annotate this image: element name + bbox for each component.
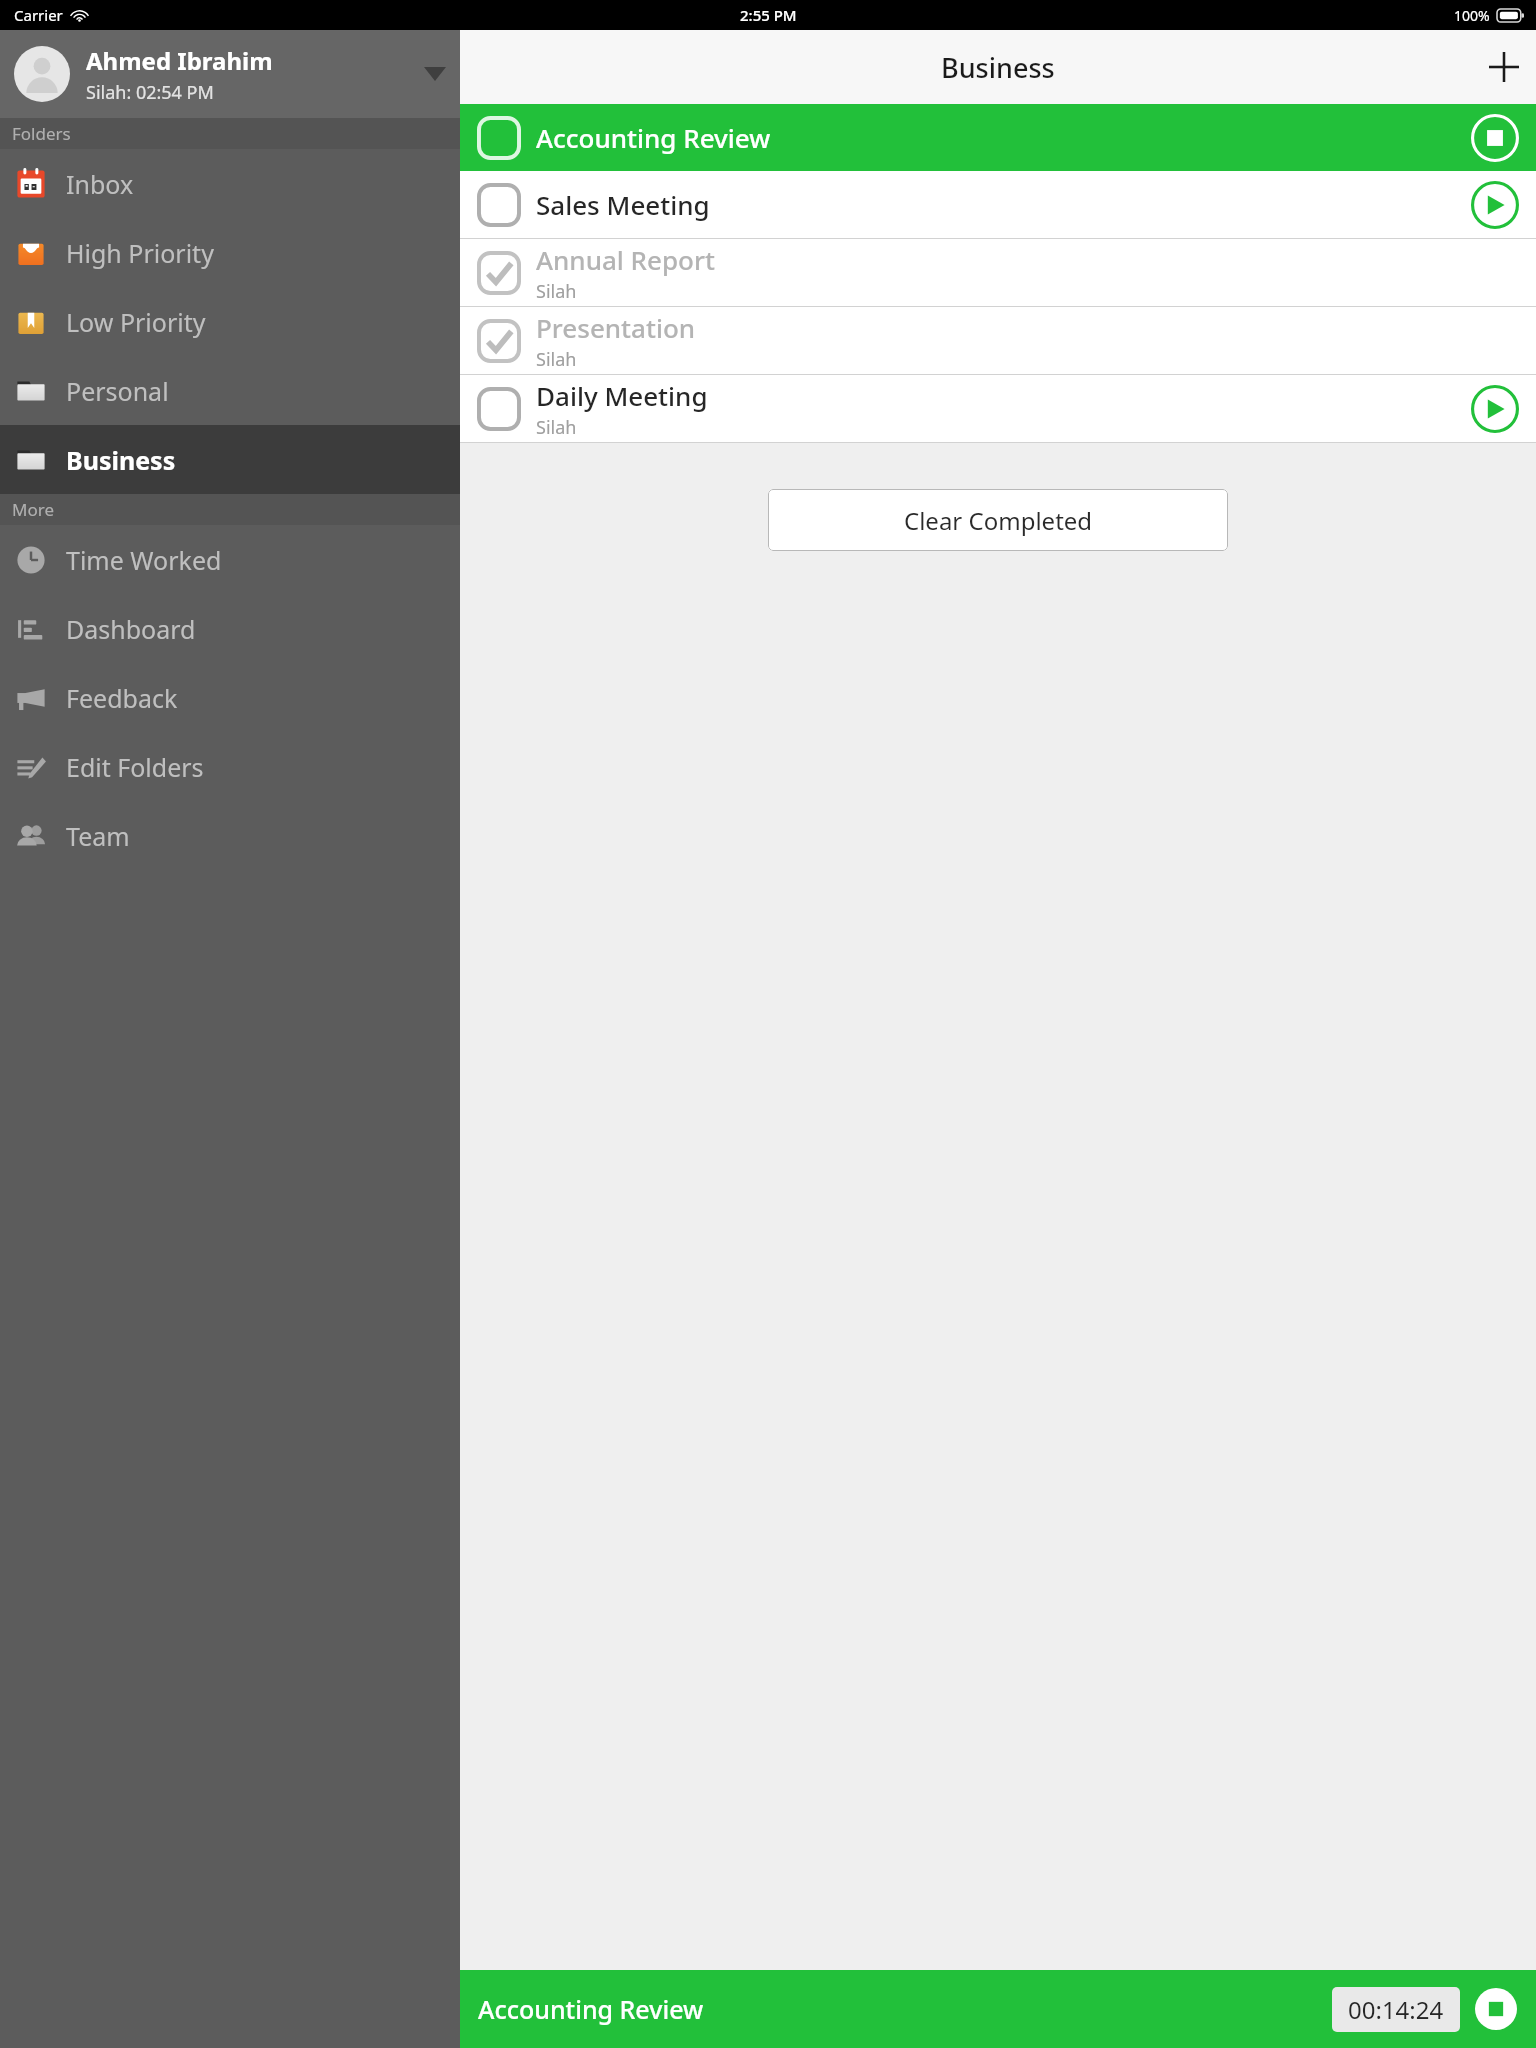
- staticText: 2:55 PM: [740, 5, 797, 25]
- staticText: Silah: [536, 415, 577, 440]
- button[interactable]: Ahmed Ibrahim: [0, 30, 460, 118]
- staticText: Daily Meeting: [536, 378, 708, 413]
- button[interactable]: Time Worked: [0, 525, 460, 594]
- staticText: Folders: [12, 122, 71, 145]
- button[interactable]: Personal: [0, 356, 460, 425]
- staticText: Edit Folders: [66, 750, 204, 784]
- staticText: Time Worked: [66, 543, 222, 577]
- button[interactable]: Clear Completed: [768, 489, 1228, 551]
- button[interactable]: Stop Accounting Review: [1468, 111, 1522, 165]
- staticText: 00:14:24: [1348, 1993, 1444, 2026]
- staticText: Carrier: [14, 5, 63, 25]
- button[interactable]: Toggle Sales Meeting: [460, 171, 1536, 238]
- staticText: Silah: 02:54 PM: [86, 80, 214, 105]
- staticText: Accounting Review: [478, 1992, 704, 2026]
- staticText: Silah: [536, 347, 577, 372]
- button[interactable]: Start Daily Meeting: [1468, 382, 1522, 436]
- button[interactable]: Dashboard: [0, 594, 460, 663]
- button[interactable]: Toggle Accounting Review: [460, 104, 1536, 171]
- button[interactable]: Stop timer: [1474, 1987, 1518, 2031]
- button[interactable]: Toggle Annual Report: [460, 239, 1536, 306]
- button[interactable]: Start Sales Meeting: [1468, 178, 1522, 232]
- button[interactable]: Add task: [1472, 35, 1536, 99]
- button[interactable]: Toggle Presentation: [460, 307, 1536, 374]
- staticText: Silah: [536, 279, 577, 304]
- staticText: Accounting Review: [536, 120, 771, 155]
- button[interactable]: Feedback: [0, 663, 460, 732]
- staticText: High Priority: [66, 236, 214, 270]
- button[interactable]: Team: [0, 801, 460, 870]
- staticText: Clear Completed: [904, 504, 1093, 537]
- button[interactable]: High Priority: [0, 218, 460, 287]
- button[interactable]: Inbox: [0, 149, 460, 218]
- button[interactable]: Toggle Daily Meeting: [476, 386, 522, 432]
- staticText: Inbox: [66, 167, 134, 201]
- staticText: Business: [66, 443, 176, 477]
- button[interactable]: Business: [0, 425, 460, 494]
- staticText: More: [12, 498, 54, 521]
- staticText: Annual Report: [536, 242, 715, 277]
- button[interactable]: Toggle Daily Meeting: [460, 375, 1536, 442]
- staticText: Ahmed Ibrahim: [86, 44, 273, 77]
- staticText: 100%: [1454, 6, 1490, 25]
- staticText: Sales Meeting: [536, 187, 710, 222]
- button[interactable]: Toggle Presentation: [476, 318, 522, 364]
- staticText: Presentation: [536, 310, 696, 345]
- staticText: Personal: [66, 374, 169, 408]
- staticText: Feedback: [66, 681, 178, 715]
- button[interactable]: Accounting Review: [460, 1970, 1536, 2048]
- staticText: Business: [941, 49, 1055, 86]
- staticText: Dashboard: [66, 612, 196, 646]
- button[interactable]: Edit Folders: [0, 732, 460, 801]
- button[interactable]: Low Priority: [0, 287, 460, 356]
- staticText: Low Priority: [66, 305, 206, 339]
- staticText: Team: [66, 819, 130, 853]
- button[interactable]: Toggle Sales Meeting: [476, 182, 522, 228]
- button[interactable]: Toggle Annual Report: [476, 250, 522, 296]
- button[interactable]: Toggle Accounting Review: [476, 115, 522, 161]
